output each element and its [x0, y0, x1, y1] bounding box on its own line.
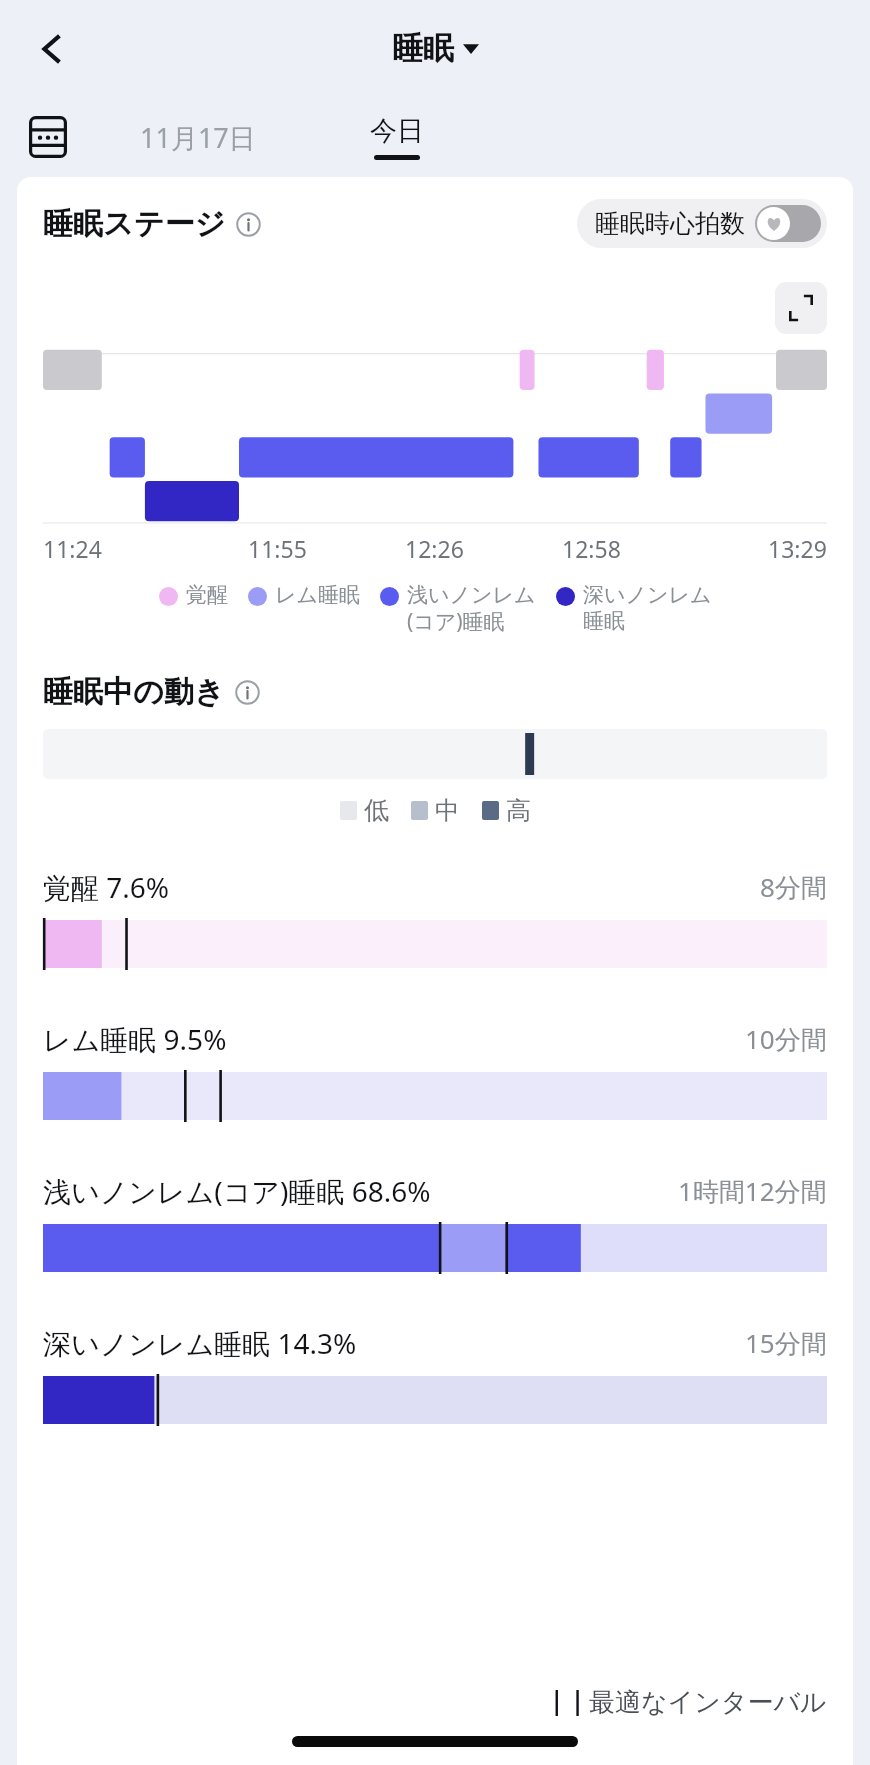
staticText: 10分間 [745, 1021, 827, 1057]
staticText: 12:26 [405, 533, 464, 564]
staticText: 睡眠 [392, 29, 454, 68]
button[interactable]: 全画面表示 [775, 282, 827, 334]
staticText: 深いノンレム睡眠 14.3% [43, 1324, 357, 1362]
staticText: 11:55 [248, 533, 307, 564]
button[interactable]: 睡眠時心拍数 [577, 199, 827, 248]
staticText: 1時間12分間 [678, 1173, 827, 1209]
staticText: 13:29 [768, 533, 827, 564]
button[interactable]: 浅いノンレム(コア)睡眠 68.6% [43, 1172, 827, 1272]
button[interactable]: レム睡眠 9.5% [43, 1020, 827, 1120]
button[interactable]: 深いノンレム睡眠 14.3% [43, 1324, 827, 1424]
button[interactable]: 今日 [370, 114, 424, 160]
staticText: 低 [364, 795, 389, 826]
button[interactable]: カレンダー [22, 111, 74, 163]
staticText: 浅いノンレム (コア)睡眠 [407, 582, 536, 635]
staticText: 睡眠ステージ [43, 205, 226, 243]
staticText: 8分間 [760, 869, 827, 905]
staticText: 浅いノンレム(コア)睡眠 68.6% [43, 1172, 431, 1210]
button[interactable]: 覚醒 7.6% [43, 868, 827, 968]
button[interactable]: 11月17日 [128, 111, 268, 164]
button[interactable]: 睡眠中の動き [43, 673, 827, 711]
button[interactable]: 睡眠ステージ [43, 205, 261, 243]
staticText: 高 [506, 795, 531, 826]
staticText: レム睡眠 9.5% [43, 1020, 227, 1058]
staticText: 最適なインターバル [589, 1686, 827, 1719]
staticText: 深いノンレム 睡眠 [583, 582, 712, 634]
staticText: レム睡眠 [275, 582, 360, 608]
staticText: 今日 [370, 114, 424, 148]
staticText: 覚醒 [186, 582, 228, 608]
button[interactable]: 戻る [22, 21, 78, 77]
staticText: 中 [435, 795, 460, 826]
staticText: 15分間 [745, 1325, 827, 1361]
staticText: 睡眠時心拍数 [595, 208, 745, 239]
staticText: 11月17日 [140, 119, 256, 156]
staticText: 覚醒 7.6% [43, 868, 170, 906]
staticText: 睡眠中の動き [43, 673, 225, 711]
staticText: 11:24 [43, 533, 102, 564]
staticText: 12:58 [562, 533, 621, 564]
button[interactable]: 睡眠 [392, 29, 479, 68]
